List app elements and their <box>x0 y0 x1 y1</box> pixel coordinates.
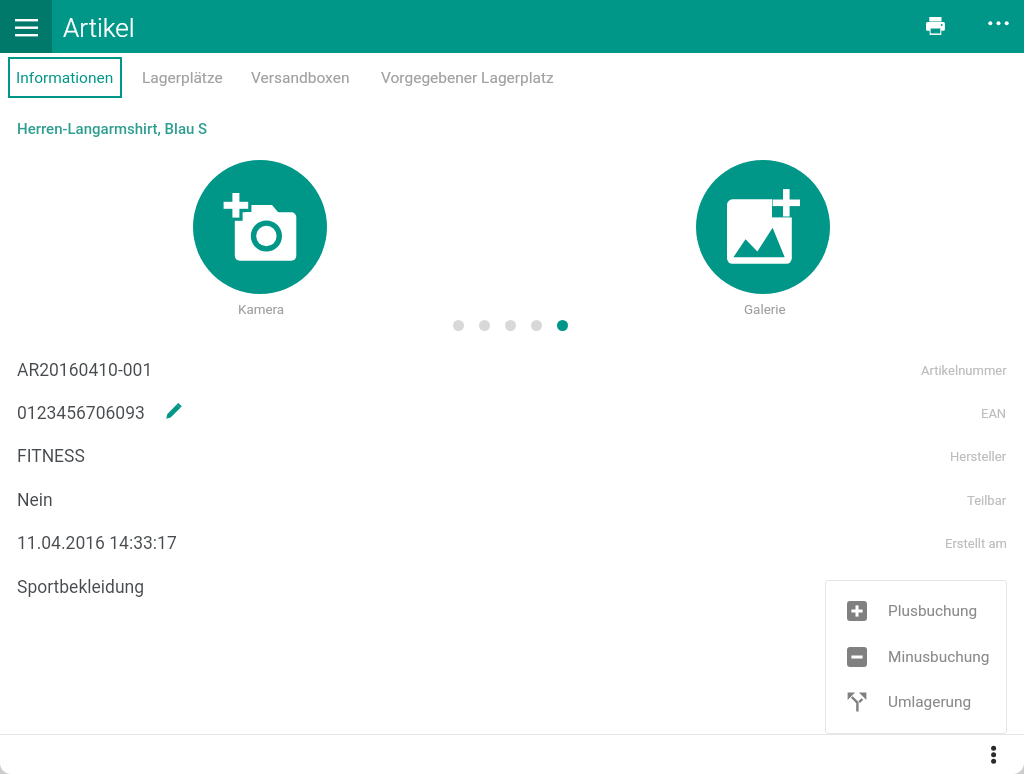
staticText: Vorgegebener Lagerplatz <box>381 69 554 87</box>
button[interactable]: Minusbuchung <box>825 638 1007 676</box>
button[interactable]: Lagerplätze <box>128 57 237 98</box>
staticText: Herren-Langarmshirt, Blau S <box>17 120 208 138</box>
staticText: Galerie <box>744 302 786 318</box>
button[interactable]: Versandboxen <box>237 57 364 98</box>
staticText: EAN <box>981 406 1007 421</box>
button[interactable]: Plusbuchung <box>825 592 1007 630</box>
button[interactable]: FITNESS <box>0 435 1024 478</box>
staticText: Minusbuchung <box>888 648 990 666</box>
button[interactable]: Menu <box>0 0 52 53</box>
button[interactable]: Nein <box>0 479 1024 522</box>
staticText: 0123456706093 <box>17 403 145 424</box>
staticText: Kamera <box>238 302 285 318</box>
staticText: AR20160410-001 <box>17 360 153 381</box>
button[interactable]: Kamera <box>193 160 327 294</box>
button[interactable]: Print <box>912 3 959 50</box>
button[interactable]: Umlagerung <box>825 683 1007 721</box>
staticText: Sportbekleidung <box>17 577 145 598</box>
button[interactable]: More options <box>974 734 1014 774</box>
staticText: Informationen <box>16 69 114 87</box>
button[interactable]: AR20160410-001 <box>0 349 1024 392</box>
staticText: Nein <box>17 490 53 511</box>
staticText: Versandboxen <box>251 69 350 87</box>
staticText: Artikelnummer <box>921 363 1007 378</box>
button[interactable]: 0123456706093 <box>0 392 1024 435</box>
staticText: Lagerplätze <box>142 69 223 87</box>
button[interactable]: Galerie <box>696 160 830 294</box>
staticText: Artikel <box>63 13 135 43</box>
staticText: 11.04.2016 14:33:17 <box>17 533 177 554</box>
button[interactable]: Informationen <box>8 57 122 98</box>
staticText: Plusbuchung <box>888 602 978 620</box>
staticText: Hersteller <box>950 449 1007 464</box>
staticText: Teilbar <box>967 493 1007 508</box>
button[interactable]: Vorgegebener Lagerplatz <box>367 57 568 98</box>
staticText: Erstellt am <box>945 536 1007 551</box>
staticText: Umlagerung <box>888 693 972 711</box>
button[interactable]: More options <box>974 3 1021 50</box>
staticText: FITNESS <box>17 446 85 467</box>
button[interactable]: Sportbekleidung <box>0 566 1024 609</box>
button[interactable]: 11.04.2016 14:33:17 <box>0 522 1024 565</box>
